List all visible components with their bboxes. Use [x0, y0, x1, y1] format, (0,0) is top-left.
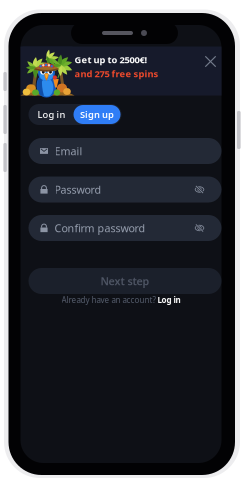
button[interactable]: Show Password: [186, 176, 212, 202]
staticText: Next step: [100, 274, 149, 288]
staticText: Get up to 2500€!: [74, 53, 147, 66]
staticText: Email: [54, 144, 82, 158]
button[interactable]: Log in: [157, 295, 180, 305]
button[interactable]: Next step: [28, 268, 221, 294]
staticText: Confirm password: [54, 221, 145, 235]
staticText: Password: [54, 182, 101, 197]
button[interactable]: Show Confirm password: [186, 215, 212, 241]
button[interactable]: Close promotion: [197, 48, 223, 74]
staticText: Sign up: [80, 108, 114, 121]
staticText: Already have an account?: [61, 295, 155, 305]
staticText: and 275 free spins: [74, 67, 158, 80]
staticText: Log in: [37, 108, 65, 121]
staticText: Log in: [157, 295, 180, 305]
button[interactable]: Log in: [29, 105, 73, 124]
button[interactable]: Sign up: [73, 105, 120, 124]
